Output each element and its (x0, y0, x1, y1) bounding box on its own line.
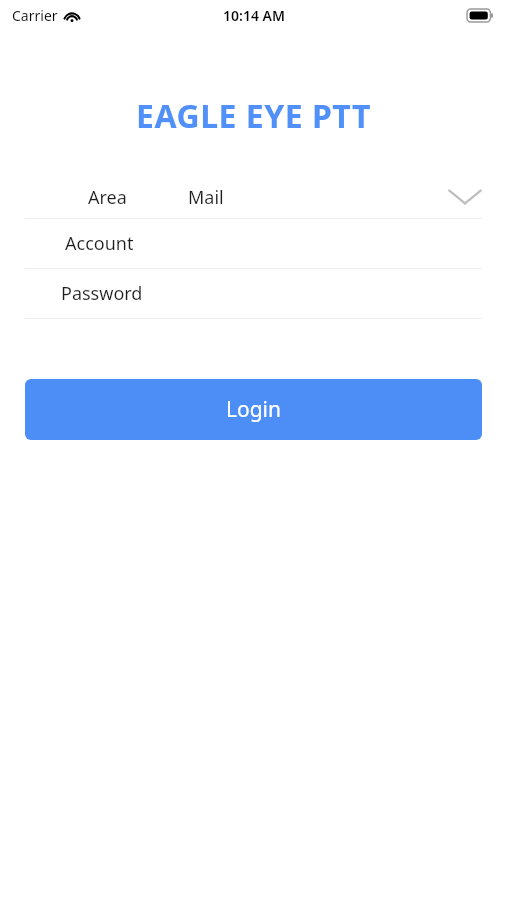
staticText: Mail (188, 185, 224, 210)
other: Select area (448, 187, 482, 207)
staticText: Password (61, 281, 143, 306)
button[interactable]: Area (0, 176, 507, 219)
staticText: EAGLE EYE PTT (0, 94, 507, 138)
staticText: 10:14 AM (223, 6, 285, 25)
staticText: Carrier (12, 6, 58, 25)
button[interactable]: Account (0, 219, 507, 269)
button[interactable]: Password (0, 269, 507, 319)
staticText: Area (88, 185, 127, 210)
staticText: Login (226, 395, 282, 424)
staticText: Account (65, 231, 134, 256)
button[interactable]: Login (25, 379, 482, 440)
